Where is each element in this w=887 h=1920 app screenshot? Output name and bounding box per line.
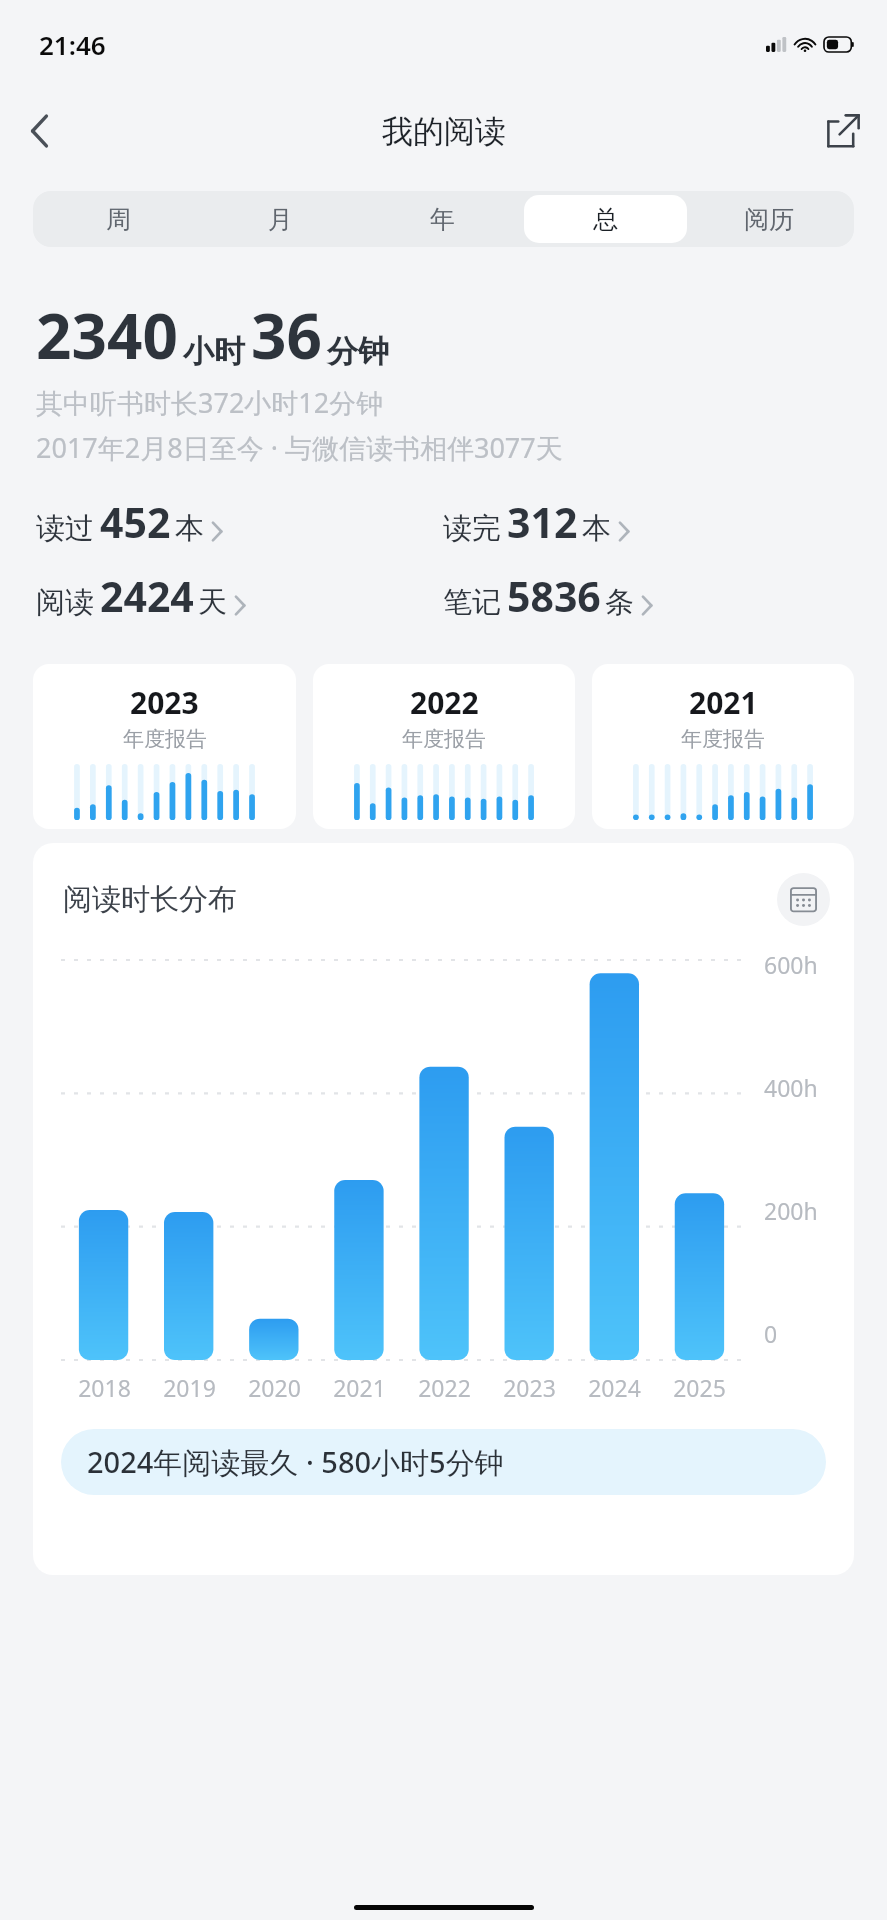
staticText: 2424 bbox=[100, 568, 194, 624]
staticText: 本 bbox=[582, 510, 611, 547]
staticText: 2019 bbox=[163, 1372, 216, 1403]
button[interactable]: 2021 bbox=[592, 664, 854, 829]
staticText: 阅历 bbox=[744, 204, 794, 235]
staticText: 我的阅读 bbox=[382, 112, 506, 151]
staticText: 年 bbox=[430, 204, 455, 235]
staticText: 笔记 bbox=[443, 584, 501, 621]
button[interactable]: 读完 bbox=[443, 494, 630, 550]
staticText: 2022 bbox=[410, 682, 479, 723]
staticText: 年度报告 bbox=[402, 726, 486, 752]
staticText: 2020 bbox=[248, 1372, 301, 1403]
staticText: 阅读时长分布 bbox=[63, 881, 237, 918]
staticText: 2021 bbox=[689, 682, 758, 723]
staticText: 读过 bbox=[36, 510, 94, 547]
button[interactable]: 阅历 bbox=[687, 195, 850, 243]
staticText: 月 bbox=[268, 204, 293, 235]
staticText: 2021 bbox=[333, 1372, 386, 1403]
staticText: 5836 bbox=[507, 568, 601, 624]
staticText: 读完 bbox=[443, 510, 501, 547]
button[interactable]: 2022 bbox=[313, 664, 575, 829]
staticText: 2025 bbox=[673, 1372, 726, 1403]
staticText: 分钟 bbox=[327, 332, 389, 371]
button[interactable]: Calendar bbox=[777, 873, 830, 926]
staticText: 天 bbox=[198, 584, 227, 621]
staticText: 452 bbox=[100, 494, 171, 550]
staticText: 2340 bbox=[36, 293, 178, 377]
staticText: 600h bbox=[764, 949, 818, 980]
staticText: 2023 bbox=[503, 1372, 556, 1403]
button[interactable]: 读过 bbox=[36, 494, 223, 550]
staticText: 312 bbox=[507, 494, 578, 550]
button[interactable]: 2024年阅读最久 · 580小时5分钟 bbox=[61, 1429, 826, 1495]
button[interactable]: 阅读 bbox=[36, 568, 246, 624]
staticText: 0 bbox=[764, 1318, 778, 1349]
staticText: 本 bbox=[175, 510, 204, 547]
staticText: 200h bbox=[764, 1195, 818, 1226]
staticText: 小时 bbox=[183, 332, 245, 371]
staticText: 年度报告 bbox=[123, 726, 207, 752]
button[interactable]: 年 bbox=[361, 195, 524, 243]
staticText: 2022 bbox=[418, 1372, 471, 1403]
staticText: 年度报告 bbox=[681, 726, 765, 752]
button[interactable]: 总 bbox=[524, 195, 687, 243]
button[interactable]: Share bbox=[815, 103, 871, 159]
button[interactable]: 2023 bbox=[33, 664, 296, 829]
staticText: 阅读 bbox=[36, 584, 94, 621]
button[interactable]: Back bbox=[14, 105, 66, 157]
staticText: 总 bbox=[593, 204, 618, 235]
staticText: 2018 bbox=[78, 1372, 131, 1403]
button[interactable]: 月 bbox=[199, 195, 361, 243]
button[interactable]: 笔记 bbox=[443, 568, 653, 624]
staticText: 其中听书时长372小时12分钟 bbox=[36, 384, 384, 421]
staticText: 36 bbox=[251, 293, 322, 377]
staticText: 条 bbox=[605, 584, 634, 621]
button[interactable]: 周 bbox=[37, 195, 199, 243]
staticText: 21:46 bbox=[39, 27, 106, 62]
staticText: 周 bbox=[106, 204, 131, 235]
staticText: 2024 bbox=[588, 1372, 641, 1403]
staticText: 2017年2月8日至今 · 与微信读书相伴3077天 bbox=[36, 429, 563, 466]
staticText: 400h bbox=[764, 1072, 818, 1103]
staticText: 2024年阅读最久 · 580小时5分钟 bbox=[87, 1442, 504, 1482]
staticText: 2023 bbox=[130, 682, 199, 723]
